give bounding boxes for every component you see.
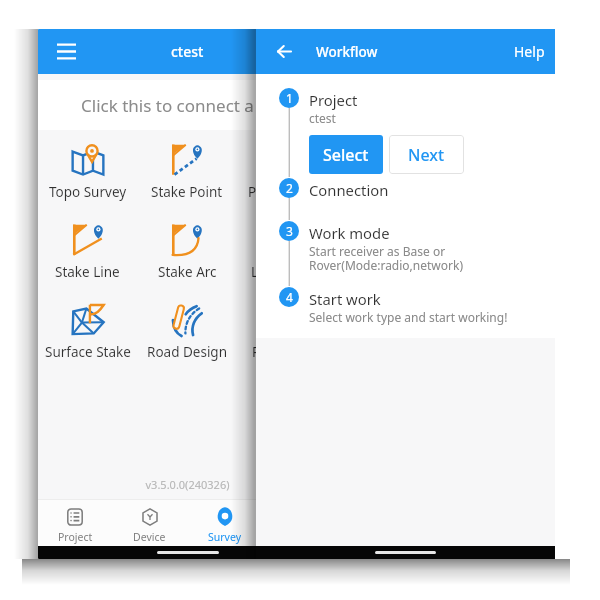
staticText: Start receiver as Base or Rover(Mode:rad… xyxy=(309,243,463,274)
button[interactable]: Line Survey xyxy=(237,214,337,294)
button[interactable]: Device xyxy=(112,500,187,546)
staticText: Line Survey xyxy=(251,263,324,281)
staticText: Next xyxy=(408,144,445,166)
button[interactable]: Project xyxy=(38,500,112,546)
button[interactable]: Stake Line xyxy=(38,214,137,294)
button[interactable]: Road Design xyxy=(137,294,237,374)
button[interactable]: Road Stake xyxy=(237,294,337,374)
staticText: 2 xyxy=(286,180,293,196)
staticText: Project xyxy=(309,90,358,110)
staticText: v3.5.0.0(240326) xyxy=(38,477,337,492)
button[interactable]: 1 xyxy=(256,88,555,124)
staticText: Click this to connect a device xyxy=(81,94,309,117)
button[interactable]: Back xyxy=(256,29,313,74)
staticText: Work mode xyxy=(309,223,390,243)
staticText: Road Stake xyxy=(252,343,323,361)
staticText: Stake Line xyxy=(55,263,120,281)
button[interactable]: Select xyxy=(309,135,383,174)
staticText: Start work xyxy=(309,289,381,309)
staticText: Project xyxy=(58,530,93,544)
button[interactable]: Next xyxy=(389,135,464,174)
button[interactable]: Survey xyxy=(187,500,262,546)
button[interactable]: Help xyxy=(500,29,555,74)
staticText: Point Survey xyxy=(248,183,327,201)
button[interactable]: 4 xyxy=(256,287,555,323)
button[interactable]: Menu xyxy=(38,29,94,74)
staticText: ctest xyxy=(309,110,336,126)
button[interactable]: Click this to connect a device xyxy=(38,80,337,130)
staticText: Surface Stake xyxy=(45,343,131,361)
staticText: Select work type and start working! xyxy=(309,309,508,325)
staticText: Survey xyxy=(208,530,241,544)
staticText: 1 xyxy=(286,90,293,106)
staticText: Help xyxy=(514,42,545,61)
staticText: Road Design xyxy=(147,343,228,361)
staticText: ctest xyxy=(171,42,204,61)
button[interactable]: Stake Arc xyxy=(137,214,237,294)
staticText: Workflow xyxy=(316,43,378,61)
staticText: Stake Arc xyxy=(158,263,217,281)
staticText: Select xyxy=(323,144,369,166)
staticText: Connection xyxy=(309,180,389,200)
staticText: Topo Survey xyxy=(49,183,127,201)
button[interactable]: Point Survey xyxy=(237,134,337,214)
staticText: 3 xyxy=(286,223,293,239)
button[interactable]: Topo Survey xyxy=(38,134,137,214)
button[interactable]: Stake Point xyxy=(137,134,237,214)
staticText: Device xyxy=(133,530,166,544)
staticText: Stake Point xyxy=(151,183,223,201)
button[interactable]: Surface Stake xyxy=(38,294,137,374)
button[interactable]: 2 xyxy=(256,178,555,198)
button[interactable]: 3 xyxy=(256,221,555,272)
staticText: 4 xyxy=(286,289,293,305)
